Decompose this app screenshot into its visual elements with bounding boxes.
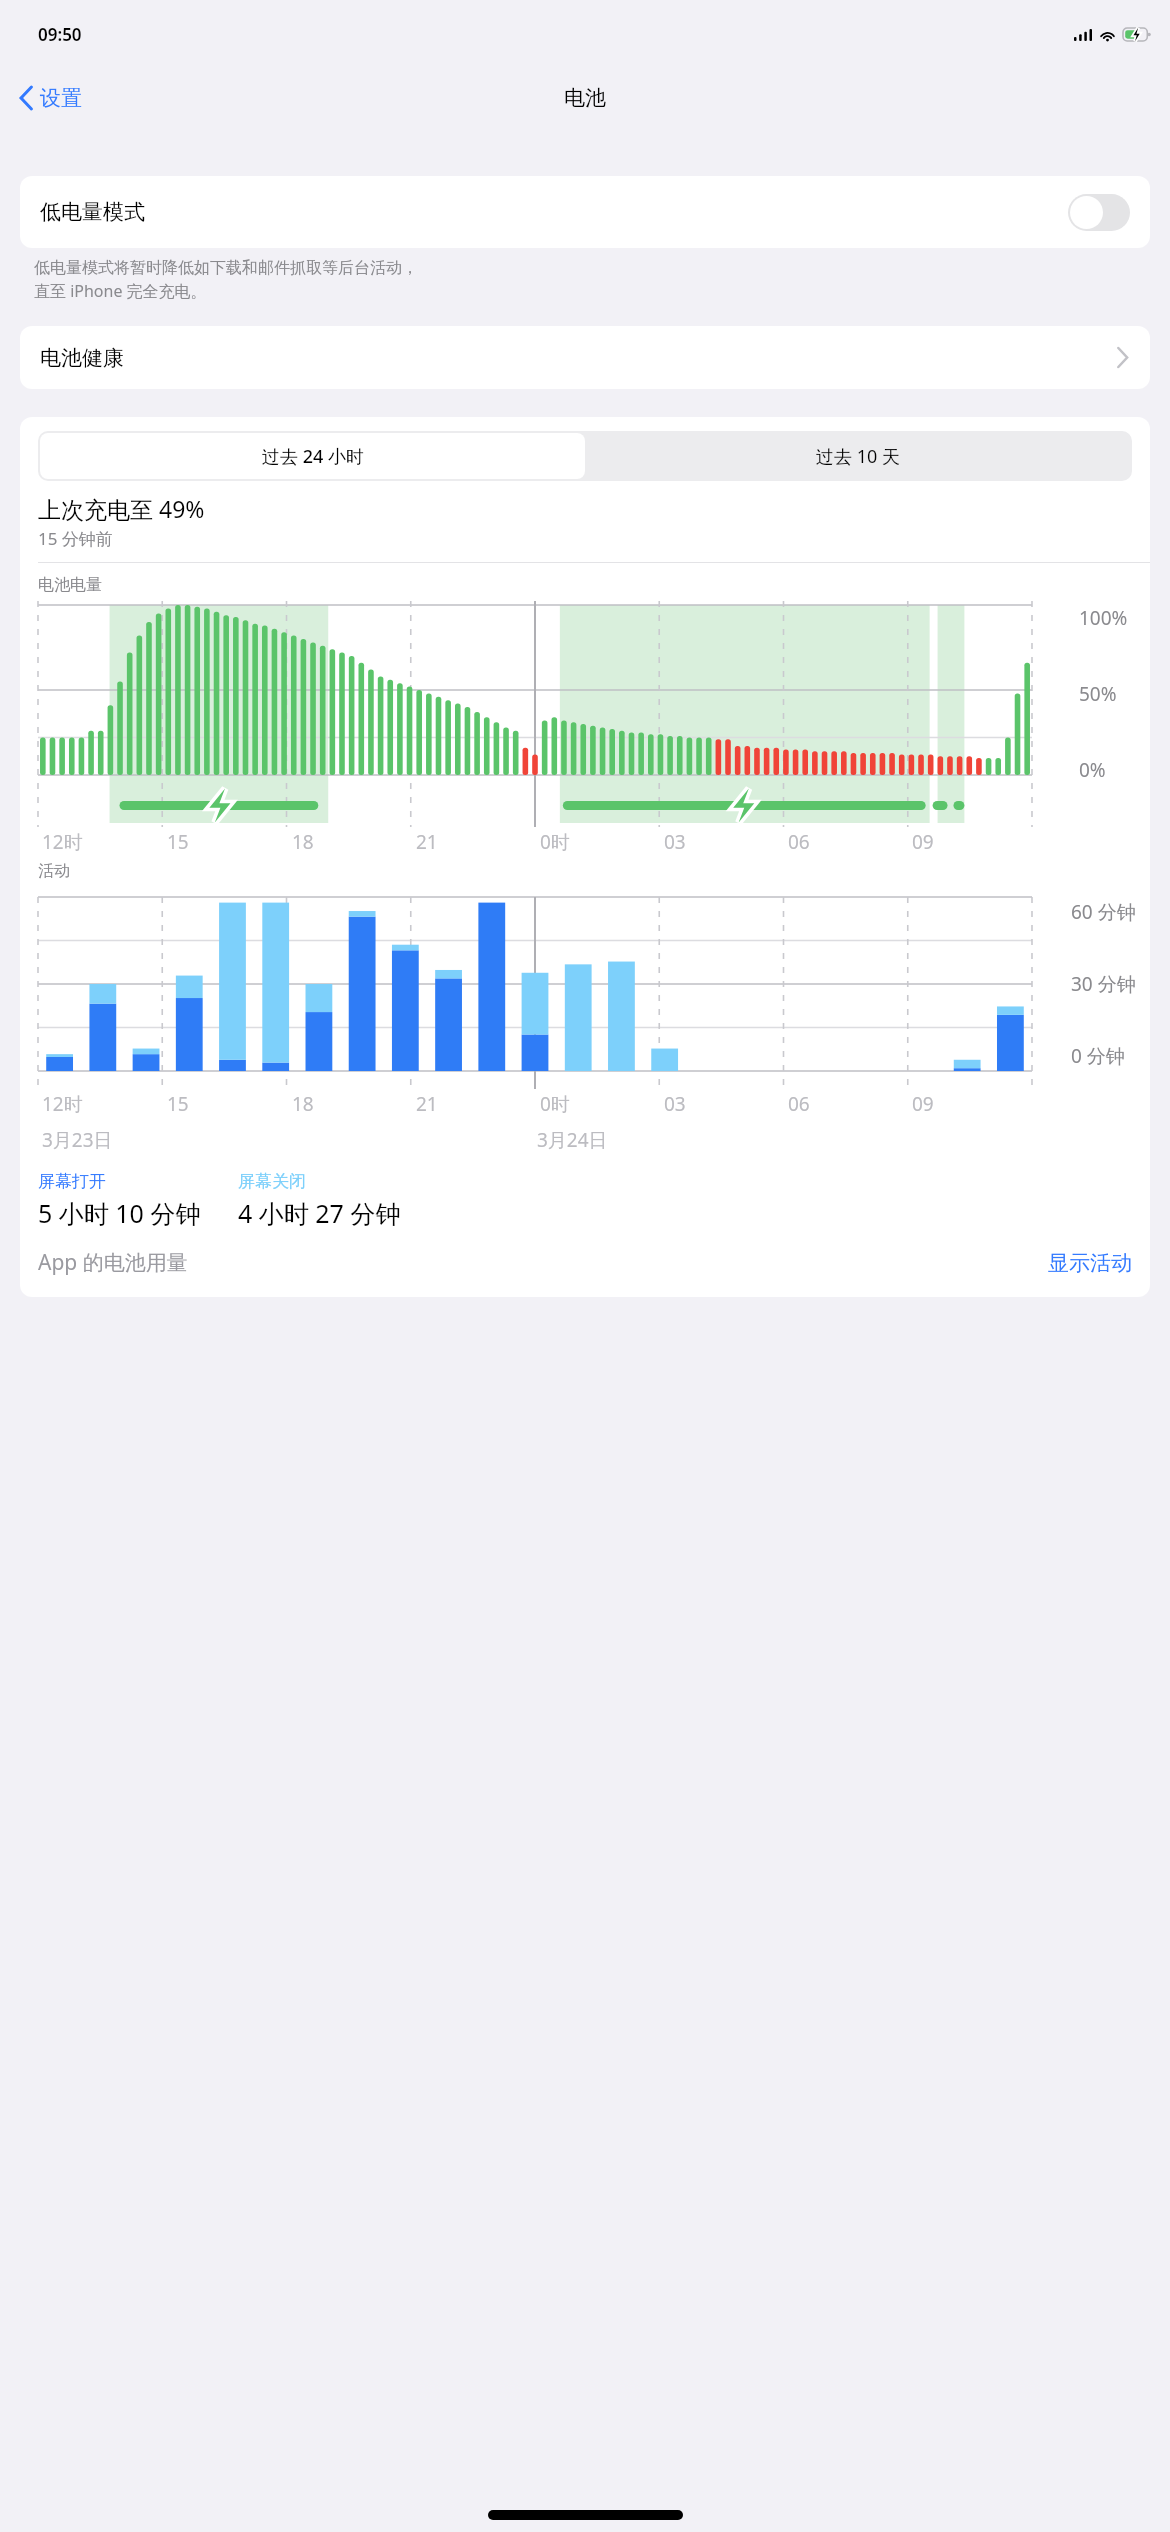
button[interactable]: 低电量模式开关 bbox=[1068, 194, 1130, 231]
button[interactable]: 显示活动 bbox=[1048, 1250, 1132, 1276]
staticText: 低电量模式将暂时降低如下载和邮件抓取等后台活动， 直至 iPhone 完全充电。 bbox=[34, 258, 418, 302]
staticText: 12时 bbox=[42, 1091, 83, 1117]
staticText: 屏幕关闭 bbox=[238, 1171, 306, 1192]
staticText: 低电量模式 bbox=[40, 199, 145, 225]
staticText: 15 bbox=[167, 829, 189, 855]
staticText: 0时 bbox=[540, 829, 570, 855]
staticText: 18 bbox=[292, 829, 314, 855]
staticText: 活动 bbox=[38, 861, 70, 881]
staticText: 过去 24 小时 bbox=[262, 444, 364, 469]
staticText: 03 bbox=[664, 829, 686, 855]
staticText: 09 bbox=[912, 1091, 934, 1117]
staticText: 03 bbox=[664, 1091, 686, 1117]
staticText: 0 分钟 bbox=[1071, 1043, 1125, 1069]
staticText: 电池 bbox=[564, 85, 606, 111]
staticText: 电池电量 bbox=[38, 575, 102, 595]
staticText: 设置 bbox=[40, 85, 82, 111]
staticText: 4 小时 27 分钟 bbox=[238, 1196, 401, 1230]
staticText: App 的电池用量 bbox=[38, 1248, 188, 1277]
staticText: 0时 bbox=[540, 1091, 570, 1117]
staticText: 12时 bbox=[42, 829, 83, 855]
staticText: 5 小时 10 分钟 bbox=[38, 1196, 201, 1230]
button[interactable]: 电池健康 bbox=[20, 326, 1150, 389]
staticText: 过去 10 天 bbox=[816, 444, 900, 469]
button[interactable]: 过去 10 天 bbox=[585, 433, 1130, 479]
staticText: 60 分钟 bbox=[1071, 899, 1136, 925]
staticText: 15 分钟前 bbox=[38, 527, 113, 550]
staticText: 06 bbox=[788, 1091, 810, 1117]
staticText: 100% bbox=[1079, 605, 1128, 631]
button[interactable]: 设置 bbox=[12, 79, 90, 117]
staticText: 21 bbox=[416, 829, 438, 855]
staticText: 屏幕打开 bbox=[38, 1171, 106, 1192]
staticText: 电池健康 bbox=[40, 345, 124, 371]
button[interactable]: 低电量模式 bbox=[20, 176, 1150, 248]
staticText: 3月23日 bbox=[42, 1127, 537, 1153]
staticText: 0% bbox=[1079, 757, 1106, 783]
staticText: 09:50 bbox=[38, 23, 82, 46]
staticText: 30 分钟 bbox=[1071, 971, 1136, 997]
staticText: 06 bbox=[788, 829, 810, 855]
staticText: 15 bbox=[167, 1091, 189, 1117]
staticText: 50% bbox=[1079, 681, 1117, 707]
staticText: 3月24日 bbox=[537, 1127, 1032, 1153]
staticText: 21 bbox=[416, 1091, 438, 1117]
staticText: 上次充电至 49% bbox=[38, 493, 205, 524]
staticText: 09 bbox=[912, 829, 934, 855]
staticText: 18 bbox=[292, 1091, 314, 1117]
button[interactable]: 过去 24 小时 bbox=[40, 433, 585, 479]
